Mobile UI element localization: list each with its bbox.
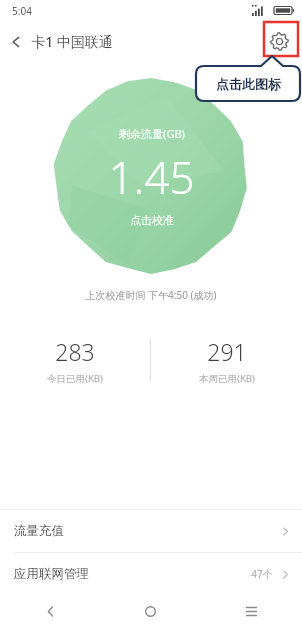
staticText: 点击此图标 xyxy=(216,76,281,92)
button[interactable]: Home xyxy=(100,595,201,628)
staticText: 剩余流量(GB) xyxy=(119,126,185,141)
button[interactable]: Back xyxy=(0,595,100,628)
staticText: 本周已用(KB) xyxy=(199,372,255,385)
staticText: 291 xyxy=(207,336,247,367)
staticText: 今日已用(KB) xyxy=(47,372,103,385)
staticText: 5:04 xyxy=(12,4,32,18)
staticText: 47个 xyxy=(251,567,273,581)
button[interactable]: Recent apps xyxy=(201,595,302,628)
button[interactable]: 卡1 中国联通 xyxy=(0,26,121,57)
staticText: 应用联网管理 xyxy=(14,566,89,582)
staticText: 点击校准 xyxy=(130,213,174,227)
button[interactable]: 剩余流量(GB) xyxy=(53,78,249,274)
button[interactable]: 283 xyxy=(0,332,150,388)
staticText: 上次校准时间 下午4:50 (成功) xyxy=(85,288,217,302)
staticText: 1.45 xyxy=(108,147,195,207)
staticText: 流量充值 xyxy=(14,523,64,539)
staticText: 283 xyxy=(55,336,95,367)
button[interactable]: Settings xyxy=(266,28,292,54)
button[interactable]: 流量充值 xyxy=(0,510,302,552)
staticText: 卡1 中国联通 xyxy=(31,32,113,51)
button[interactable]: 291 xyxy=(151,332,302,388)
button[interactable]: 应用联网管理 xyxy=(0,553,302,595)
